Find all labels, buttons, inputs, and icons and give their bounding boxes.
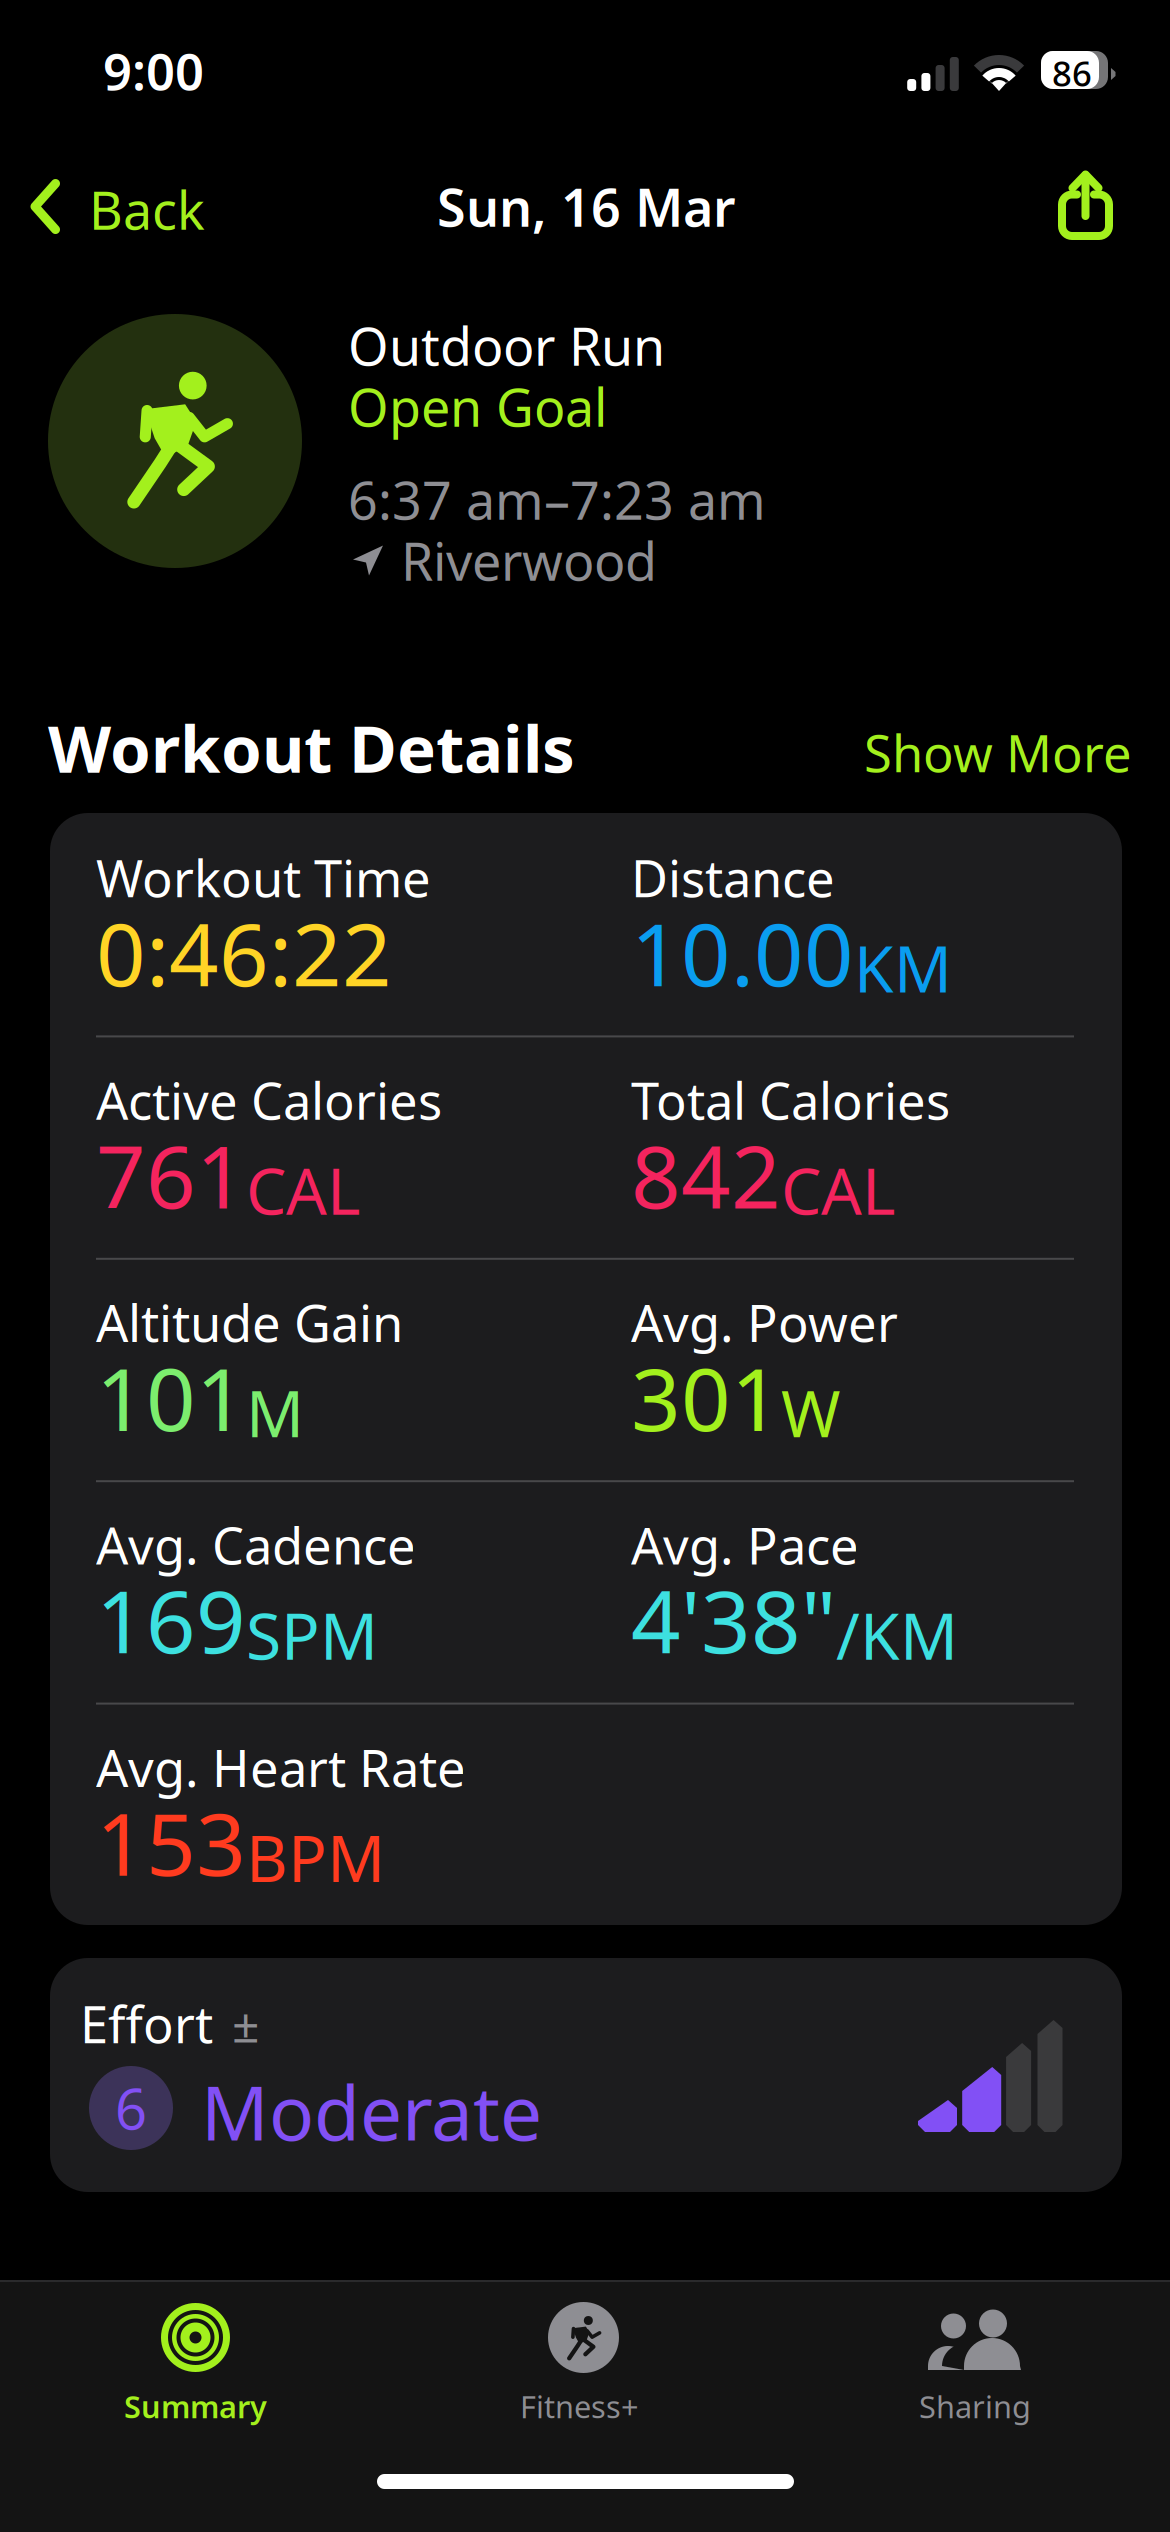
button[interactable]: Show More [838, 695, 1158, 810]
staticText: Total Calories [631, 1066, 950, 1134]
staticText: 9:00 [103, 37, 204, 104]
staticText: Moderate [201, 2062, 542, 2161]
staticText: Effort [80, 1990, 213, 2057]
staticText: SPM [246, 1592, 378, 1677]
staticText: 6 [115, 2071, 147, 2145]
staticText: Avg. Power [631, 1289, 898, 1356]
staticText: M [246, 1370, 304, 1455]
button[interactable]: Effort [50, 1958, 1122, 2192]
staticText: Avg. Heart Rate [96, 1734, 466, 1801]
staticText: BPM [246, 1815, 385, 1900]
button[interactable]: Back [0, 144, 235, 269]
staticText: Back [89, 175, 205, 244]
staticText: Avg. Cadence [96, 1511, 416, 1578]
staticText: /KM [836, 1592, 958, 1677]
staticText: 6:37 am–7:23 am [348, 465, 766, 534]
staticText: Workout Details [48, 704, 575, 791]
staticText: Summary [124, 2386, 267, 2427]
staticText: ± [232, 1992, 259, 2056]
staticText: CAL [781, 1147, 896, 1232]
staticText: 10.00 [631, 895, 854, 1010]
staticText: KM [854, 925, 952, 1010]
staticText: Outdoor Run [348, 311, 665, 380]
staticText: 301 [631, 1340, 781, 1455]
staticText: 761 [96, 1117, 246, 1232]
staticText: Distance [631, 844, 835, 911]
staticText: Riverwood [401, 526, 657, 595]
staticText: Show More [864, 719, 1132, 786]
button[interactable]: Summary [0, 2288, 390, 2438]
staticText: 153 [96, 1785, 246, 1900]
staticText: Altitude Gain [96, 1289, 403, 1356]
staticText: 842 [631, 1117, 781, 1232]
staticText: Workout Time [96, 844, 431, 911]
staticText: 169 [96, 1562, 246, 1677]
staticText: 101 [96, 1340, 246, 1455]
staticText: Fitness+ [520, 2386, 639, 2427]
staticText: Open Goal [348, 372, 607, 441]
button[interactable]: Share [1027, 144, 1141, 267]
staticText: Sun, 16 Mar [437, 172, 736, 241]
staticText: 86 [1052, 50, 1092, 96]
button[interactable]: Fitness+ [390, 2288, 780, 2438]
staticText: 0:46:22 [96, 895, 392, 1010]
staticText: Sharing [919, 2386, 1031, 2427]
staticText: Avg. Pace [631, 1511, 859, 1578]
staticText: Active Calories [96, 1066, 442, 1134]
staticText: W [781, 1370, 841, 1455]
staticText: 4'38" [631, 1562, 836, 1677]
button[interactable]: Sharing [780, 2288, 1170, 2438]
staticText: CAL [246, 1147, 361, 1232]
